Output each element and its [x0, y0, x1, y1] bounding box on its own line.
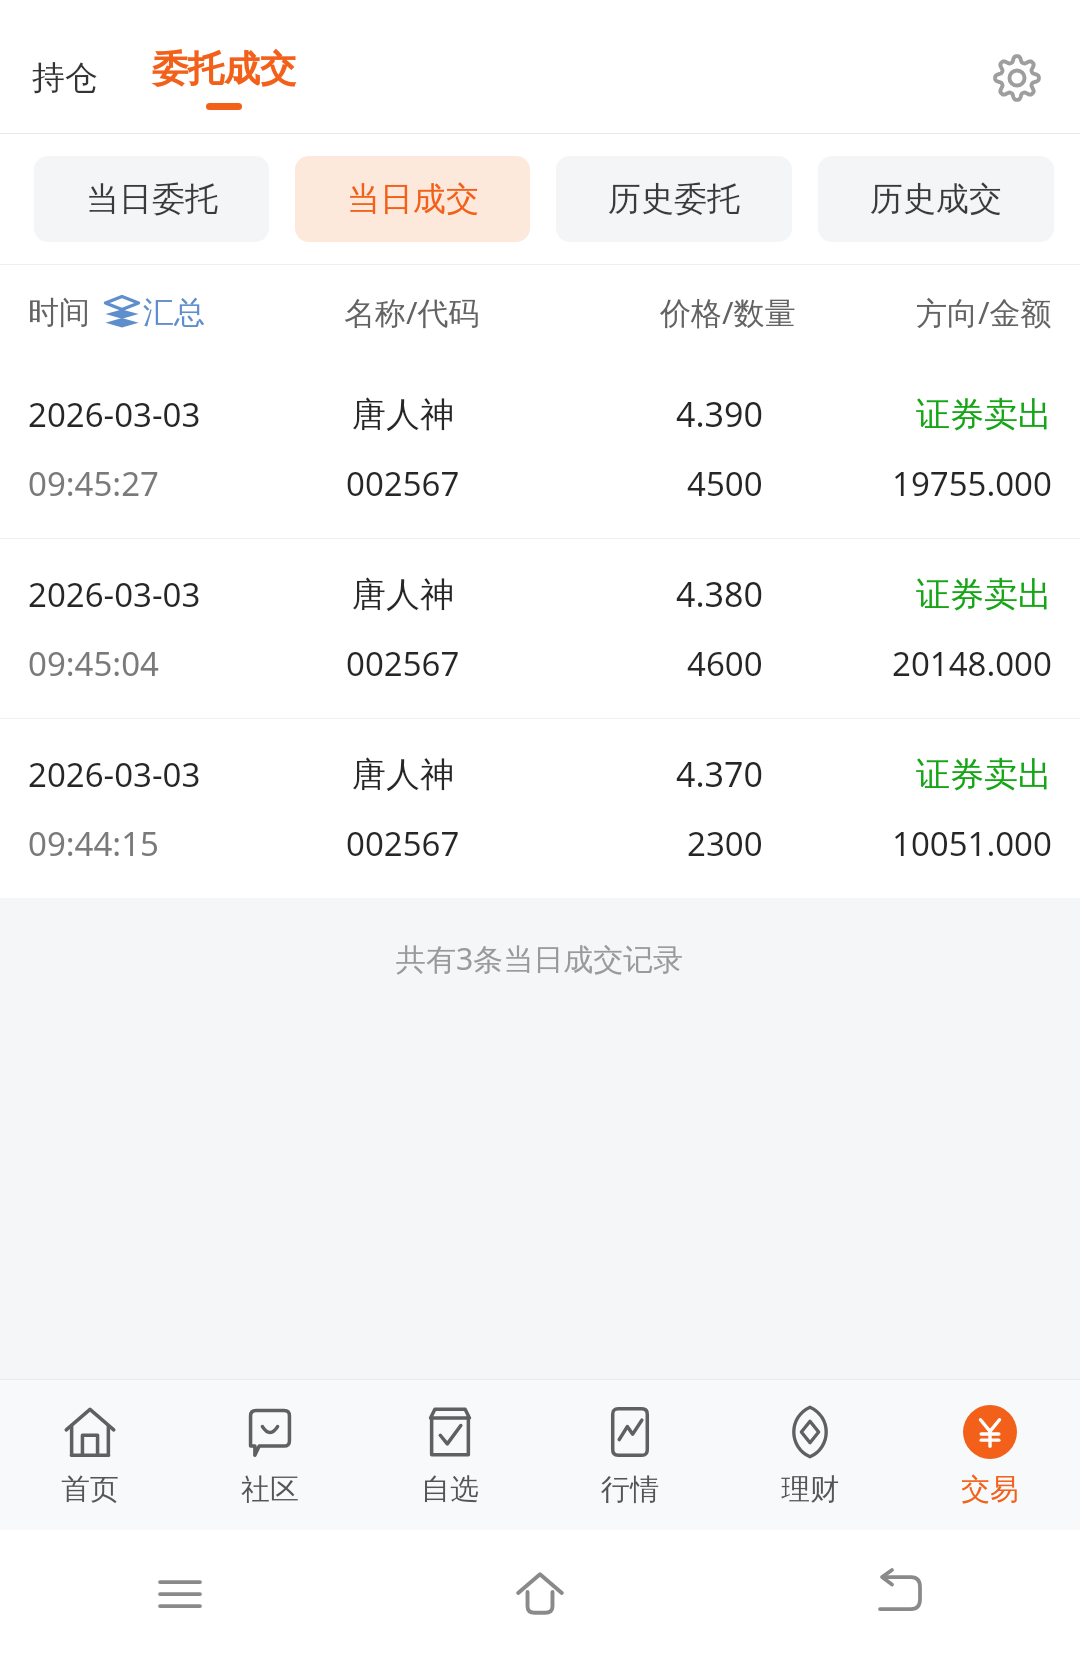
staticText: 价格/数量	[660, 291, 796, 333]
button[interactable]: 自选	[360, 1380, 540, 1530]
button[interactable]: 交易	[900, 1380, 1080, 1530]
staticText: 首页	[61, 1471, 119, 1508]
staticText: 20148.000	[892, 641, 1052, 686]
staticText: 002567	[346, 461, 460, 506]
button[interactable]: 当日委托	[34, 156, 269, 242]
staticText: 当日成交	[347, 178, 479, 220]
staticText: 002567	[346, 641, 460, 686]
staticText: 唐人神	[352, 753, 454, 796]
staticText: 当日委托	[86, 178, 218, 220]
staticText: 证券卖出	[916, 753, 1052, 796]
staticText: 002567	[346, 821, 460, 866]
staticText: 2026-03-03	[28, 392, 291, 437]
staticText: 时间	[28, 293, 90, 332]
staticText: 4.380	[676, 571, 763, 617]
staticText: 行情	[601, 1471, 659, 1508]
button[interactable]: 首页	[0, 1380, 180, 1530]
staticText: 社区	[241, 1471, 299, 1508]
button[interactable]: 当日成交	[295, 156, 530, 242]
staticText: 汇总	[143, 293, 205, 332]
button[interactable]: Settings	[980, 41, 1054, 115]
staticText: 2026-03-03	[28, 572, 291, 617]
staticText: 持仓	[32, 57, 98, 99]
staticText: 共有3条当日成交记录	[396, 938, 684, 979]
button[interactable]: 历史委托	[556, 156, 792, 242]
staticText: 理财	[781, 1471, 839, 1508]
staticText: 历史成交	[870, 178, 1002, 220]
staticText: 证券卖出	[916, 393, 1052, 436]
staticText: 2026-03-03	[28, 752, 291, 797]
button[interactable]: 2026-03-03	[0, 539, 1080, 718]
staticText: 唐人神	[352, 393, 454, 436]
button[interactable]: 社区	[180, 1380, 360, 1530]
staticText: 10051.000	[892, 821, 1052, 866]
staticText: 证券卖出	[916, 573, 1052, 616]
staticText: 09:44:15	[28, 821, 291, 866]
button[interactable]: 时间	[28, 293, 284, 332]
staticText: 交易	[961, 1471, 1019, 1508]
staticText: 历史委托	[608, 178, 740, 220]
staticText: 名称/代码	[344, 291, 480, 333]
staticText: 09:45:27	[28, 461, 291, 506]
staticText: 4.390	[676, 391, 763, 437]
staticText: 2300	[687, 821, 763, 866]
staticText: 4.370	[676, 751, 763, 797]
staticText: 自选	[421, 1471, 479, 1508]
staticText: 09:45:04	[28, 641, 291, 686]
button[interactable]: Recents	[0, 1530, 360, 1656]
button[interactable]: 持仓	[26, 47, 104, 109]
button[interactable]: Home	[360, 1530, 720, 1656]
button[interactable]: 历史成交	[818, 156, 1054, 242]
button[interactable]: 2026-03-03	[0, 719, 1080, 898]
staticText: 方向/金额	[916, 291, 1052, 333]
button[interactable]: 理财	[720, 1380, 900, 1530]
button[interactable]: 2026-03-03	[0, 359, 1080, 538]
button[interactable]: Back	[720, 1530, 1080, 1656]
staticText: 唐人神	[352, 573, 454, 616]
staticText: 4600	[687, 641, 763, 686]
button[interactable]: 委托成交	[146, 46, 302, 110]
staticText: 4500	[687, 461, 763, 506]
button[interactable]: 行情	[540, 1380, 720, 1530]
staticText: 委托成交	[152, 46, 296, 91]
staticText: 19755.000	[892, 461, 1052, 506]
